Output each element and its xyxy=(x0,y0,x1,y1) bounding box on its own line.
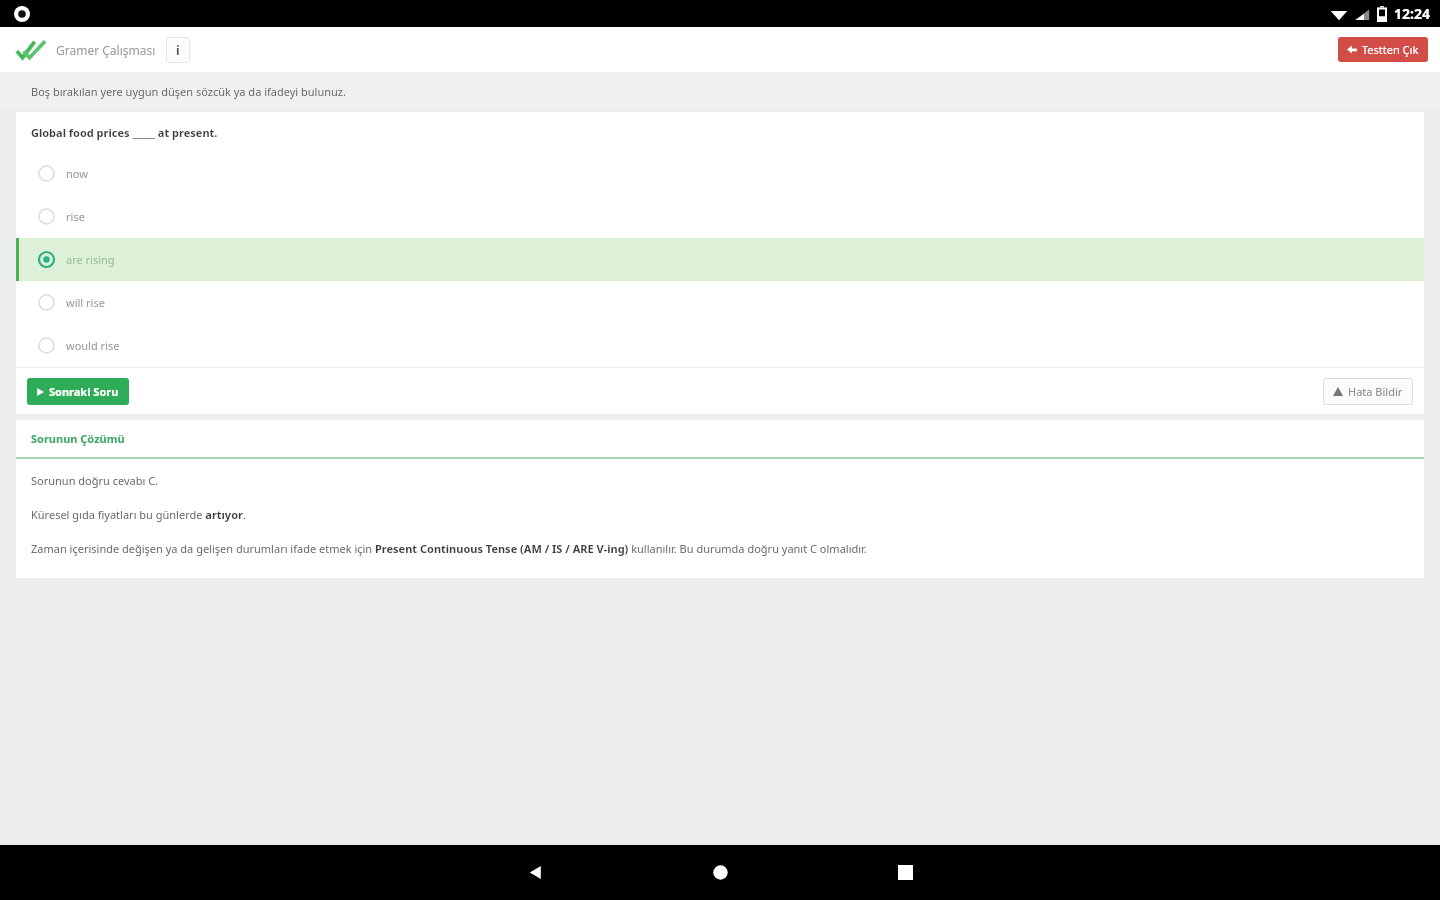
staticText: will rise xyxy=(66,295,105,310)
staticText: rise xyxy=(66,209,85,224)
staticText: now xyxy=(66,166,88,181)
button[interactable]: Testten Çık xyxy=(1338,37,1428,62)
staticText: are rising xyxy=(66,252,115,267)
staticText: i xyxy=(176,42,180,58)
staticText: Sonraki Soru xyxy=(49,384,119,399)
staticText: Gramer Çalışması xyxy=(56,42,156,58)
button[interactable]: Geri xyxy=(443,845,628,900)
staticText: Hata Bildir xyxy=(1348,384,1403,399)
button[interactable]: Ana Sayfa xyxy=(628,845,813,900)
staticText: Sorunun Çözümü xyxy=(31,431,125,446)
button[interactable]: Hata Bildir xyxy=(1323,378,1413,405)
staticText: Boş bırakılan yere uygun düşen sözcük ya… xyxy=(31,84,346,99)
button[interactable]: will rise xyxy=(16,281,1424,324)
staticText: Sorunun doğru cevabı C. xyxy=(31,473,159,488)
staticText: 12:24 xyxy=(1394,4,1430,23)
button[interactable]: Sonraki Soru xyxy=(27,378,129,405)
staticText: Global food prices _____ at present. xyxy=(31,125,218,140)
button[interactable]: Bilgi xyxy=(166,37,190,63)
staticText: Zaman içerisinde değişen ya da gelişen d… xyxy=(31,541,867,556)
staticText: Küresel gıda fiyatları bu günlerde artıy… xyxy=(31,507,246,522)
button[interactable]: are rising xyxy=(16,238,1424,281)
staticText: would rise xyxy=(66,338,120,353)
button[interactable]: would rise xyxy=(16,324,1424,367)
button[interactable]: Son Kullanılanlar xyxy=(813,845,998,900)
staticText: Testten Çık xyxy=(1362,42,1419,57)
